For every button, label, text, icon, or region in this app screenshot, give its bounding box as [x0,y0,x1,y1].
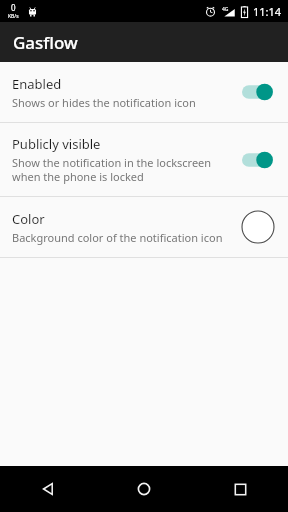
button[interactable]: Choose color [240,209,276,245]
button[interactable]: Recent apps [192,466,288,512]
staticText: 4G [222,6,229,13]
button[interactable]: Back [0,466,96,512]
button[interactable]: Color [0,197,288,257]
staticText: Shows or hides the notification icon [12,95,196,110]
button[interactable]: Enabled [0,62,288,122]
staticText: Gasflow [13,31,78,54]
staticText: Publicly visible [12,135,101,153]
staticText: Enabled [12,75,62,93]
button[interactable]: Publicly visible [0,123,288,196]
staticText: 11:14 [253,4,282,19]
button[interactable]: Toggle [242,149,276,171]
button[interactable]: Toggle [242,81,276,103]
staticText: 0 [11,2,16,13]
staticText: Show the notification in the lockscreen … [12,155,212,184]
staticText: Color [12,210,45,228]
staticText: KB/s [8,13,19,20]
button[interactable]: Home [96,466,192,512]
staticText: Background color of the notification ico… [12,230,223,245]
